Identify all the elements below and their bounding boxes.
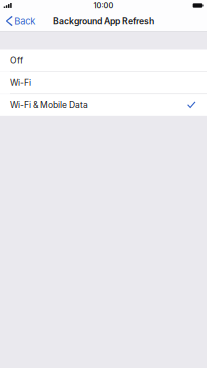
staticText: Background App Refresh: [53, 16, 154, 26]
staticText: Wi-Fi & Mobile Data: [10, 100, 88, 110]
staticText: 10:00: [93, 1, 113, 10]
staticText: Back: [14, 15, 35, 27]
button[interactable]: Wi-Fi: [0, 72, 207, 93]
button[interactable]: Off: [0, 49, 207, 71]
staticText: Off: [10, 55, 23, 65]
staticText: Wi-Fi: [10, 77, 31, 88]
button[interactable]: Wi-Fi & Mobile Data: [0, 94, 207, 116]
button[interactable]: Back: [0, 11, 40, 31]
